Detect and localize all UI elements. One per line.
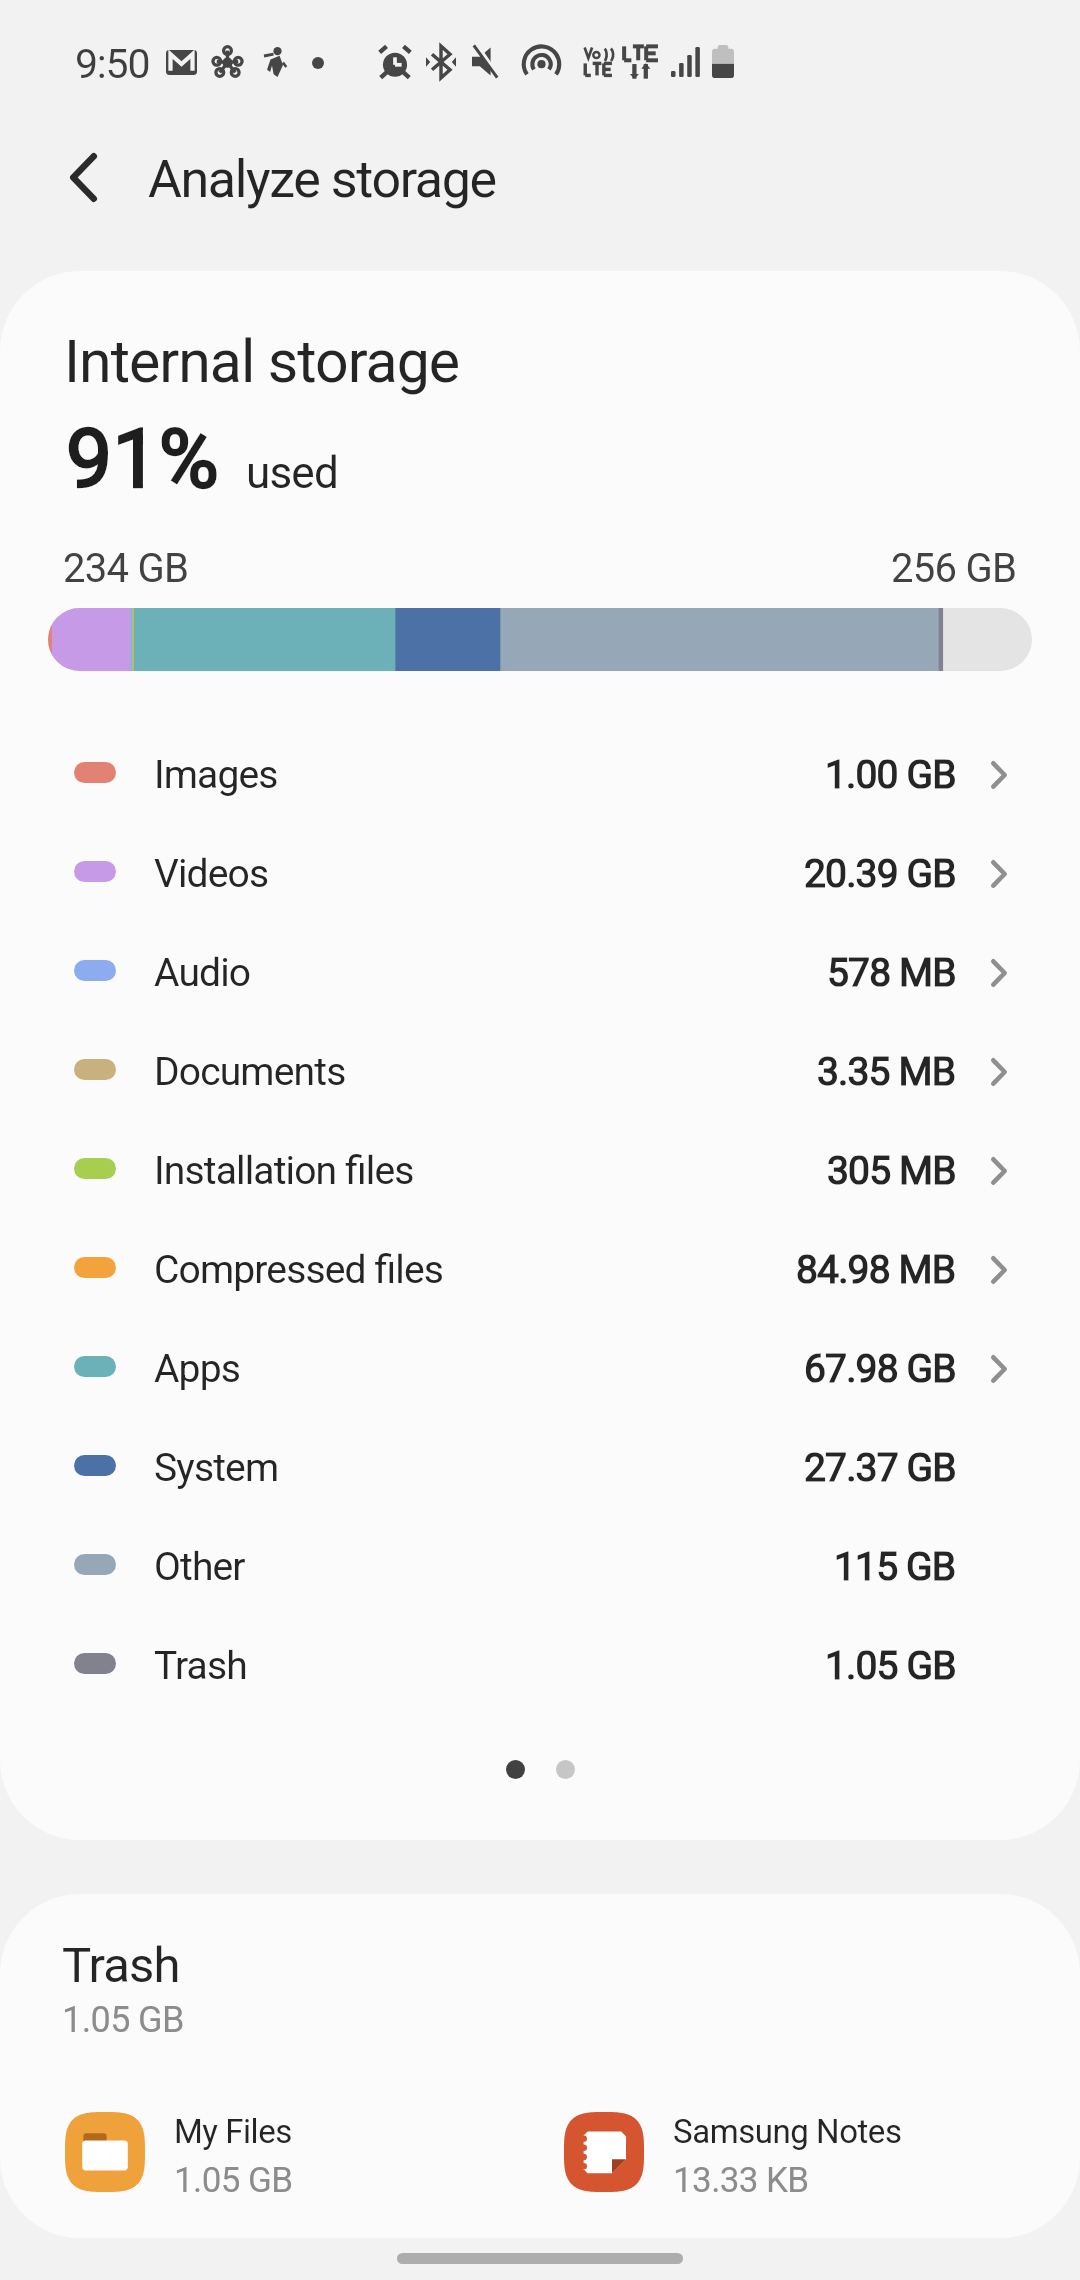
staticText: Installation files [154,1148,414,1194]
staticText: 27.37 GB [804,1445,956,1491]
staticText: Analyze storage [148,149,496,210]
button[interactable]: Page 2 [556,1760,575,1779]
staticText: 3.35 MB [817,1049,956,1095]
button[interactable]: Samsung Notes [564,2107,902,2196]
button[interactable]: Videos [0,824,1080,923]
staticText: 20.39 GB [804,851,956,897]
button[interactable]: Trash [0,1616,1080,1715]
staticText: 234 GB [63,545,189,592]
staticText: Apps [154,1346,240,1392]
staticText: System [154,1445,279,1491]
button[interactable]: System [0,1418,1080,1517]
staticText: 67.98 GB [804,1346,956,1392]
staticText: 256 GB [891,545,1017,592]
staticText: Audio [154,950,251,996]
staticText: 9:50 [75,40,150,88]
button[interactable]: Images [0,725,1080,824]
staticText: Compressed files [154,1247,444,1293]
staticText: My Files [174,2112,292,2151]
staticText: Videos [154,851,269,897]
button[interactable]: Documents [0,1022,1080,1121]
button[interactable]: Page 1 [506,1760,525,1779]
staticText: 578 MB [827,950,956,996]
staticText: 305 MB [827,1148,956,1194]
staticText: used [246,447,338,499]
staticText: 91% [66,411,220,507]
staticText: 115 GB [834,1544,956,1590]
staticText: 84.98 MB [796,1247,956,1293]
staticText: Trash [62,1937,180,1994]
staticText: Internal storage [64,327,460,396]
button[interactable]: Compressed files [0,1220,1080,1319]
staticText: 1.05 GB [62,1999,184,2041]
staticText: 1.05 GB [825,1643,956,1689]
staticText: 1.05 GB [174,2160,293,2201]
button[interactable]: Installation files [0,1121,1080,1220]
button[interactable]: Apps [0,1319,1080,1418]
staticText: Documents [154,1049,346,1095]
staticText: 1.00 GB [825,752,956,798]
button[interactable]: Back [18,126,146,228]
staticText: 13.33 KB [673,2160,809,2201]
button[interactable]: My Files [65,2107,293,2196]
staticText: Other [154,1544,245,1590]
staticText: Images [154,752,278,798]
staticText: Trash [154,1643,247,1689]
button[interactable]: Other [0,1517,1080,1616]
staticText: Samsung Notes [673,2112,902,2151]
button[interactable]: Audio [0,923,1080,1022]
